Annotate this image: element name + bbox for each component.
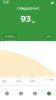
button[interactable]: цель	[44, 34, 53, 39]
staticText: 30 мая	[44, 78, 54, 81]
staticText: 93	[20, 12, 30, 24]
staticText: Динамика	[3, 39, 16, 42]
button[interactable]: Tab 0	[0, 87, 14, 100]
staticText: ▮▮	[51, 1, 53, 4]
button[interactable]: Tab 1	[14, 87, 28, 100]
staticText: цель	[45, 35, 51, 38]
staticText: кг	[31, 19, 35, 24]
button[interactable]: Tab 3	[42, 87, 56, 100]
staticText: за месяц	[4, 35, 15, 38]
staticText: 20 мая	[30, 76, 35, 83]
staticText: 9:41	[3, 1, 10, 4]
button[interactable]: Tab 2	[28, 87, 42, 100]
staticText: все	[49, 39, 53, 42]
staticText: 1 мая	[2, 76, 7, 83]
staticText: Похудение	[17, 5, 39, 11]
button[interactable]: за месяц	[3, 34, 17, 39]
staticText: 10 мая	[16, 76, 21, 83]
